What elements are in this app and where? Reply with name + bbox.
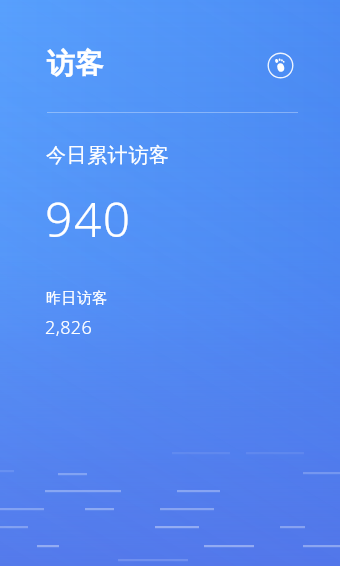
staticText: 今日累计访客	[46, 143, 170, 168]
staticText: 2,826	[45, 315, 93, 340]
button[interactable]: Visitor footprints	[267, 52, 294, 79]
staticText: 昨日访客	[46, 289, 108, 308]
staticText: 访客	[46, 46, 104, 81]
staticText: 940	[45, 186, 132, 251]
